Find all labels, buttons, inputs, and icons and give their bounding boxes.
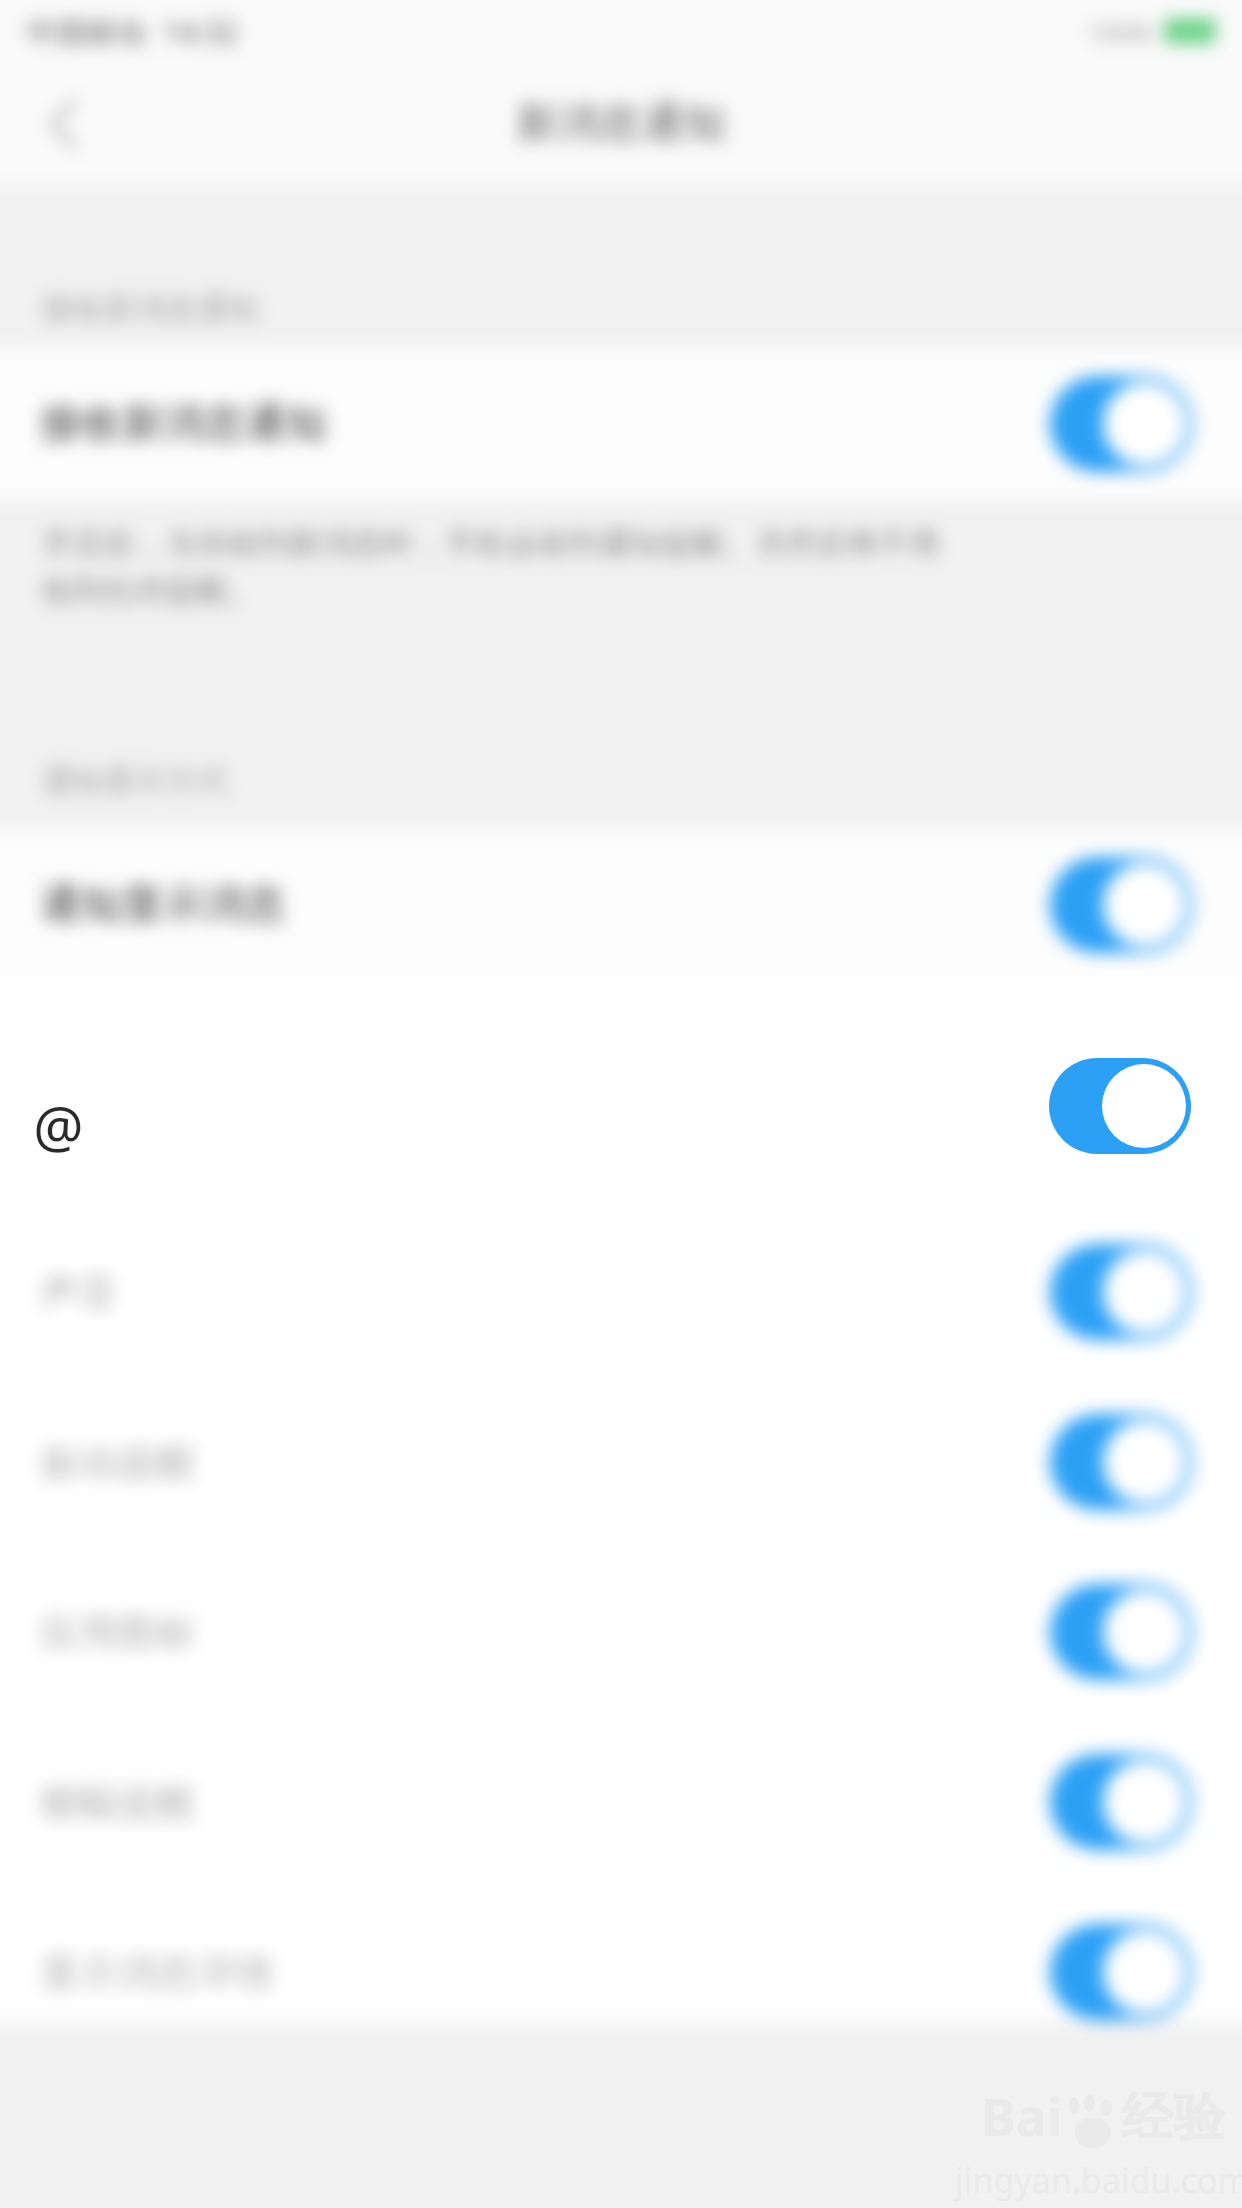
staticText: 接收新消息通知 xyxy=(40,398,327,450)
staticText: 通知显示方式 xyxy=(42,761,228,800)
button[interactable]: 横幅提醒 xyxy=(0,1718,1242,1886)
button[interactable]: Toggle xyxy=(1050,1924,1192,2020)
staticText: @ xyxy=(33,1088,84,1164)
button[interactable]: 显示消息详情 xyxy=(0,1888,1242,2056)
staticText: 显示消息详情 xyxy=(40,1948,274,1997)
staticText: 收到任何提醒。 xyxy=(42,571,259,610)
button[interactable]: 应用图标 xyxy=(0,1548,1242,1716)
button[interactable]: 声音 xyxy=(0,1208,1242,1376)
button[interactable]: 振动提醒 xyxy=(0,1378,1242,1546)
button[interactable]: 接收新消息通知 xyxy=(0,348,1242,500)
staticText: 横幅提醒 xyxy=(40,1778,196,1827)
button[interactable]: Toggle xyxy=(1050,376,1192,472)
button[interactable]: Toggle xyxy=(1050,1584,1192,1680)
staticText: 100% xyxy=(1087,14,1154,49)
button[interactable]: Toggle xyxy=(1049,1058,1191,1154)
staticText: 新消息通知 xyxy=(516,97,726,150)
staticText: 振动提醒 xyxy=(40,1438,196,1487)
button[interactable]: Toggle xyxy=(1050,1754,1192,1850)
button[interactable]: Toggle xyxy=(1050,1244,1192,1340)
staticText: Bai xyxy=(981,2080,1063,2151)
button[interactable]: @ xyxy=(0,1018,1242,1200)
staticText: 声音 xyxy=(40,1268,118,1317)
button[interactable]: Toggle xyxy=(1050,1414,1192,1510)
button[interactable]: Back xyxy=(0,69,110,179)
staticText: 通知显示消息 xyxy=(40,879,286,931)
staticText: 接收新消息通知 xyxy=(42,289,259,328)
staticText: 中国移动 14:32 xyxy=(26,11,239,52)
button[interactable]: 通知显示消息 xyxy=(0,830,1242,980)
staticText: 应用图标 xyxy=(40,1608,196,1657)
button[interactable]: Toggle xyxy=(1050,857,1192,953)
staticText: 经验 xyxy=(1121,2085,1225,2151)
staticText: 开启后，当你收到新消息时，手机会收到通知提醒。关闭后将不再 xyxy=(42,524,941,563)
